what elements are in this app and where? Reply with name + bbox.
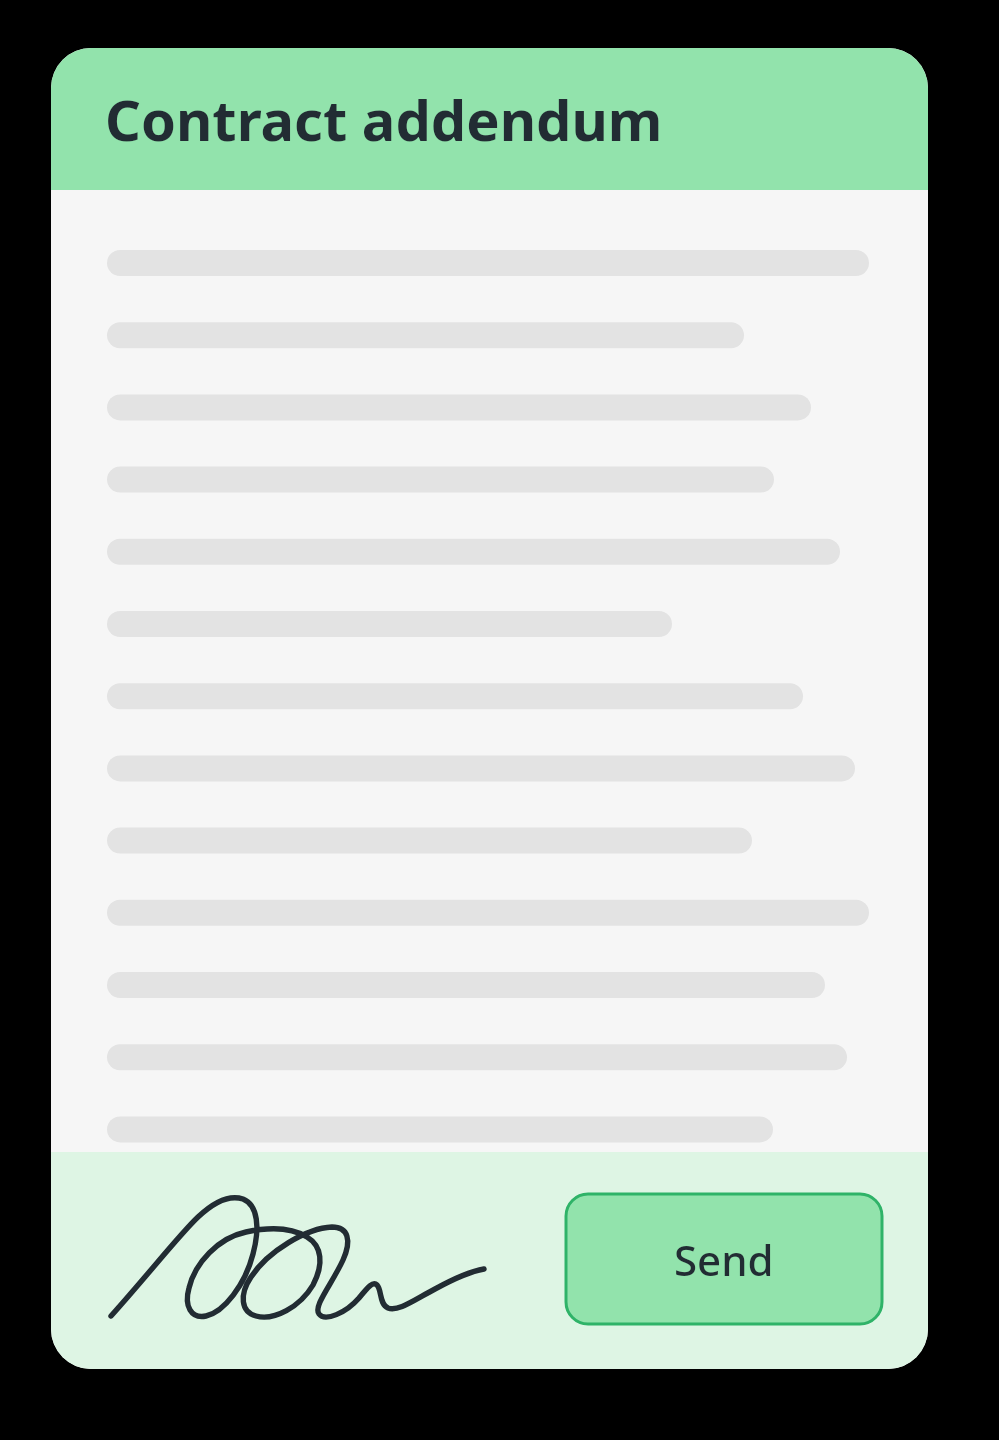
button[interactable]: Signature [100, 1185, 500, 1330]
button[interactable]: Contract addendum [51, 48, 928, 190]
staticText: Send [674, 1231, 774, 1288]
button[interactable]: Send [566, 1194, 882, 1324]
staticText: Contract addendum [105, 81, 663, 157]
